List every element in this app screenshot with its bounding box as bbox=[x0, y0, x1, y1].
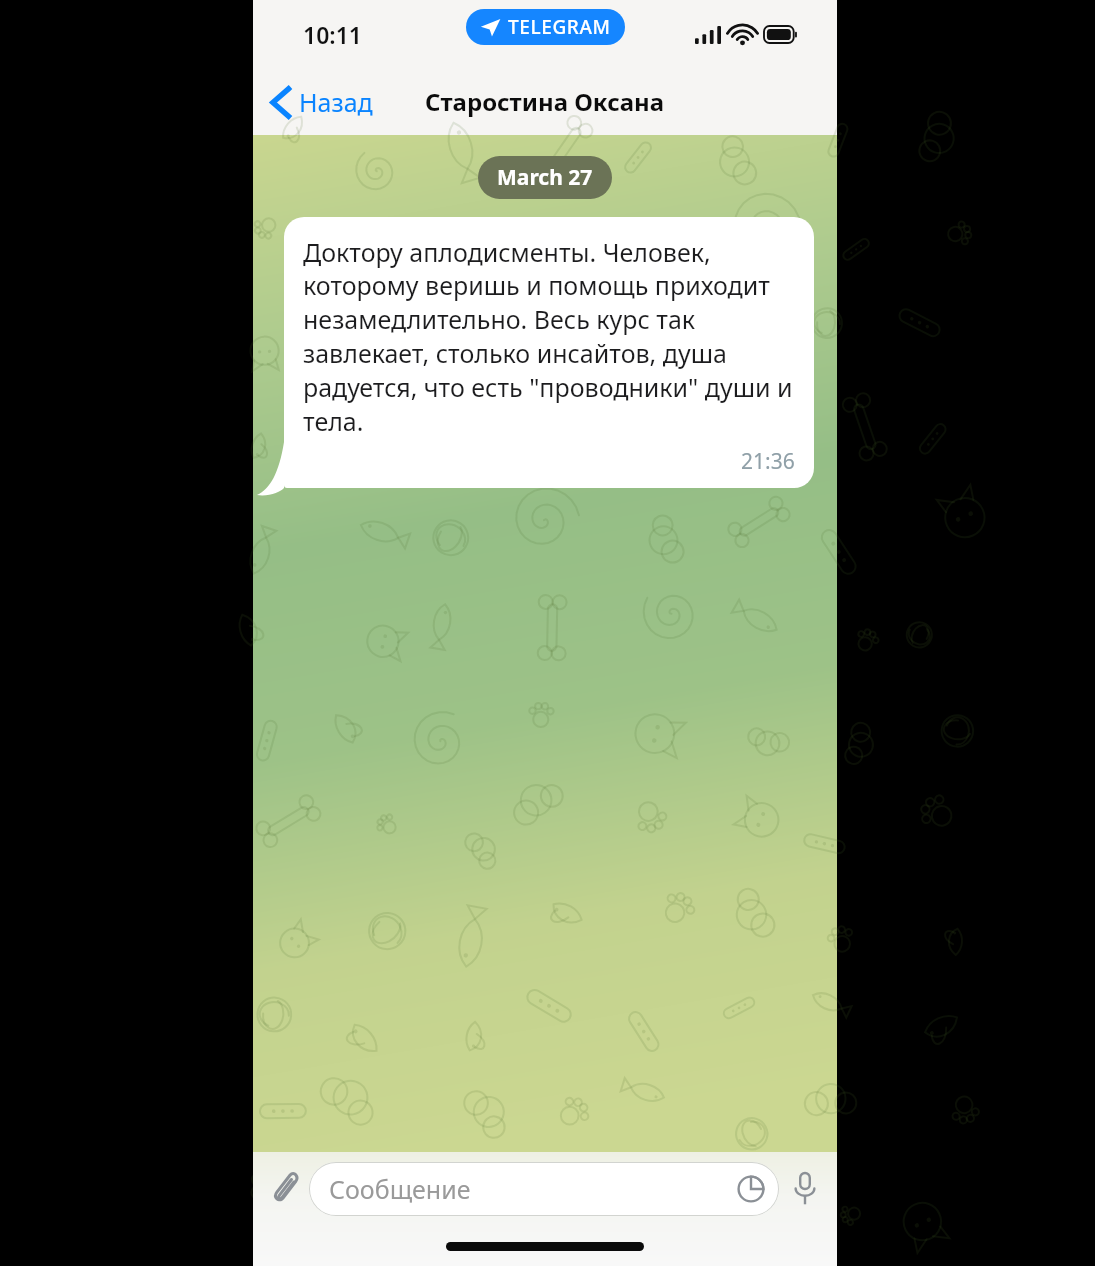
staticText: 10:11 bbox=[303, 19, 362, 50]
button[interactable]: Voice message bbox=[779, 1164, 837, 1214]
button[interactable]: Доктору аплодисменты. Человек, которому … bbox=[284, 217, 814, 488]
staticText: Доктору аплодисменты. Человек, которому … bbox=[303, 235, 795, 439]
staticText: 21:36 bbox=[741, 447, 795, 476]
button[interactable]: Attach file bbox=[253, 1164, 309, 1214]
other: Stickers bbox=[737, 1175, 765, 1203]
button[interactable]: TELEGRAM bbox=[466, 9, 625, 45]
button[interactable]: March 27 bbox=[478, 156, 612, 199]
staticText: Старостина Оксана bbox=[425, 85, 665, 118]
staticText: Сообщение bbox=[329, 1172, 737, 1206]
staticText: TELEGRAM bbox=[508, 14, 611, 40]
staticText: Назад bbox=[299, 85, 373, 119]
button[interactable]: Назад bbox=[253, 77, 385, 127]
staticText: March 27 bbox=[497, 163, 593, 192]
button[interactable]: Сообщение bbox=[309, 1162, 779, 1216]
